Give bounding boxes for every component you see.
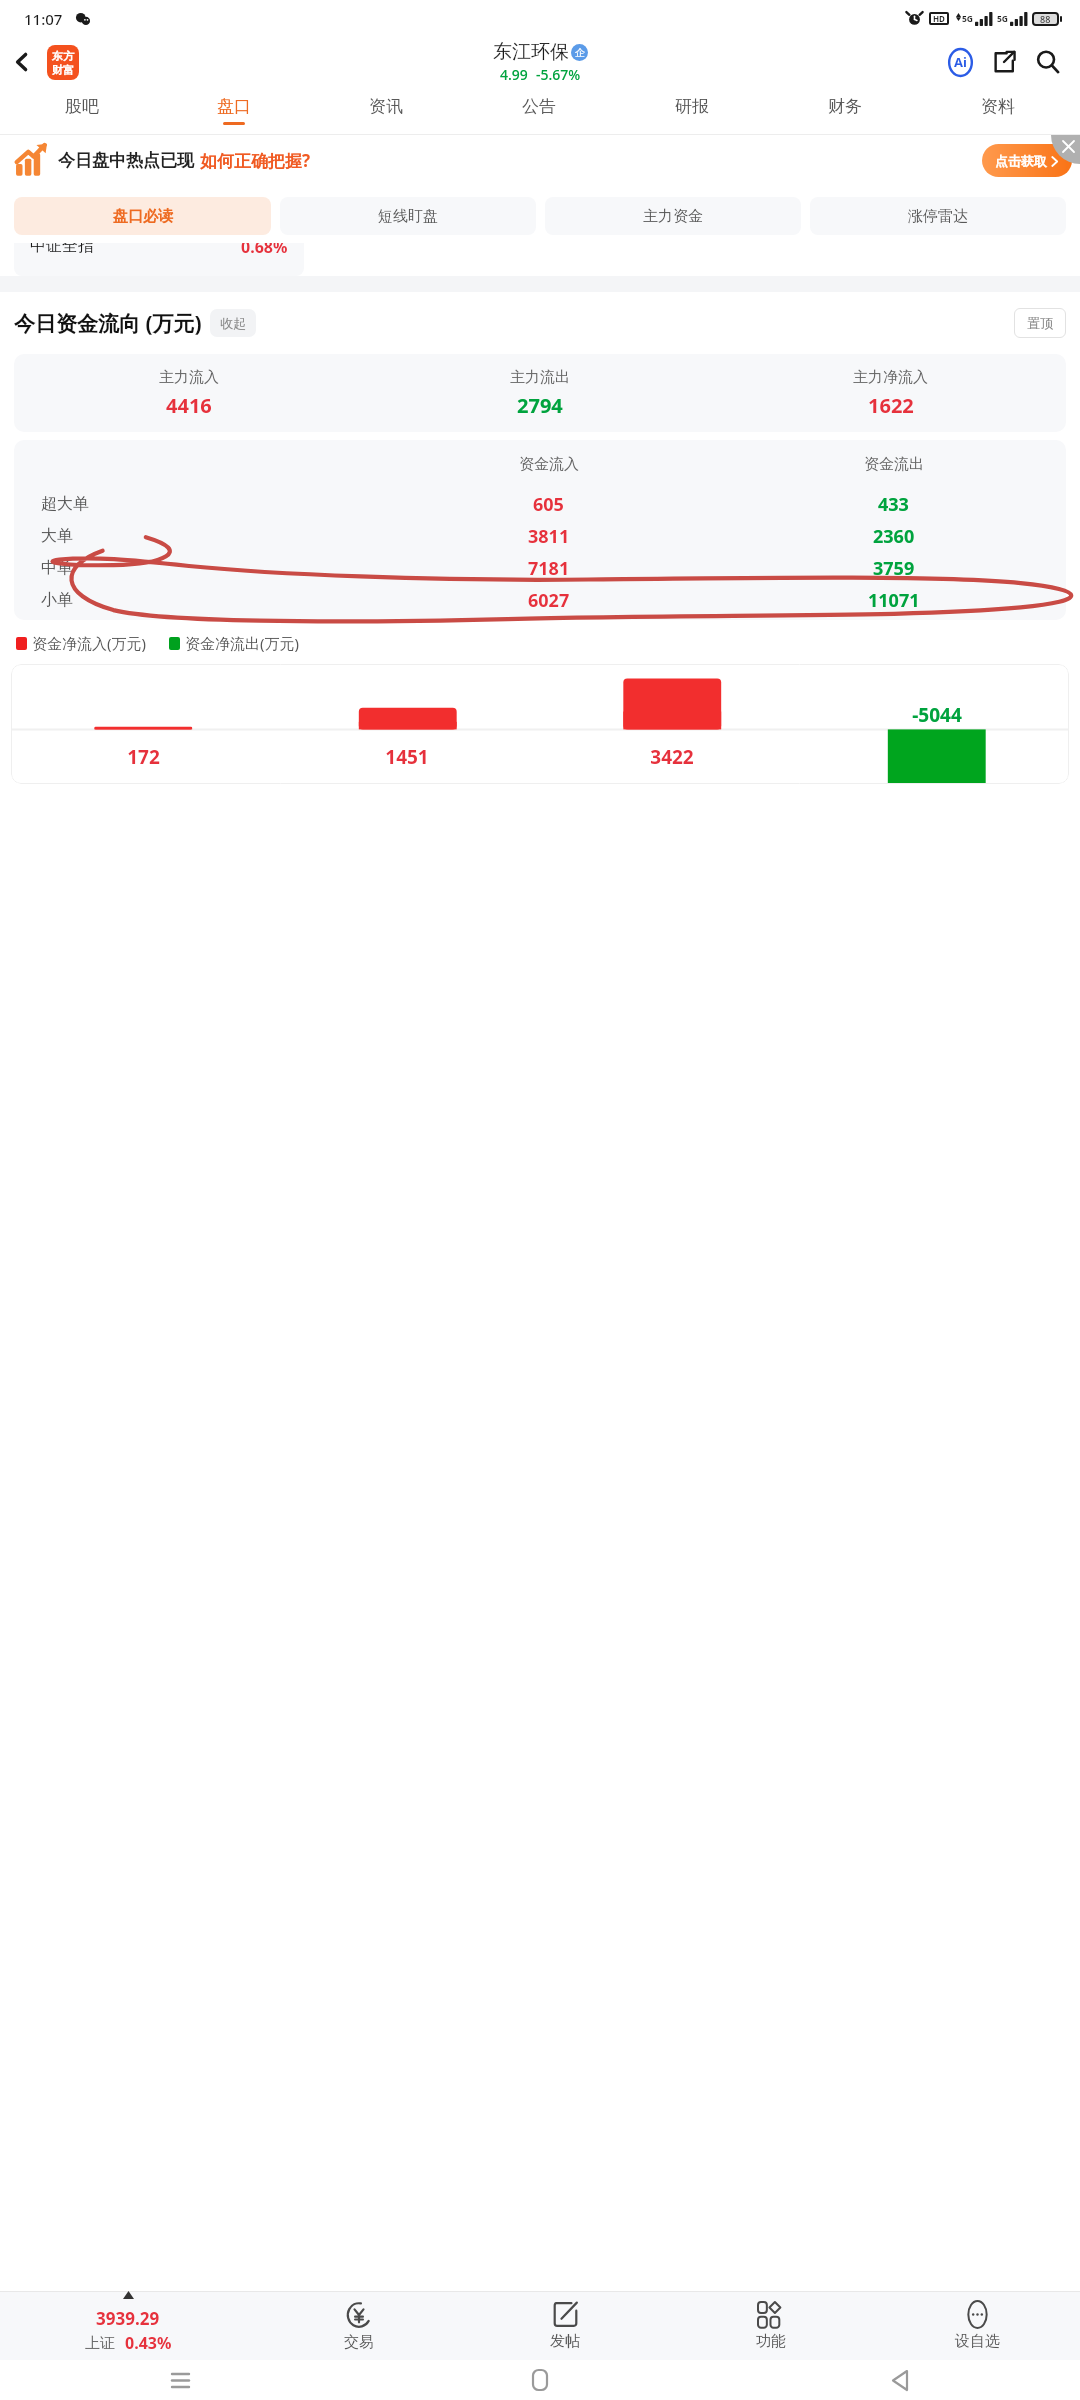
staticText: 605: [533, 492, 564, 517]
staticText: 3939.29: [96, 2307, 160, 2330]
staticText: 中单: [41, 558, 73, 578]
button[interactable]: 3939.29: [0, 2292, 256, 2360]
button[interactable]: Search: [1026, 40, 1070, 84]
staticText: -5.67%: [536, 65, 581, 84]
button[interactable]: 公告: [462, 87, 615, 134]
button[interactable]: 主力资金: [545, 197, 801, 235]
staticText: 如何正确把握?: [200, 149, 311, 172]
staticText: 东江环保: [493, 40, 569, 64]
staticText: 置顶: [1027, 315, 1053, 331]
button[interactable]: 172: [11, 664, 1069, 784]
button[interactable]: 置顶: [1014, 308, 1066, 338]
staticText: 6027: [528, 588, 570, 613]
button[interactable]: 超大单: [14, 488, 1066, 520]
staticText: Ai: [954, 53, 967, 71]
button[interactable]: 主力净流入: [715, 354, 1066, 432]
button[interactable]: Home: [523, 2363, 557, 2397]
button[interactable]: Back: [0, 37, 44, 87]
button[interactable]: 大单: [14, 520, 1066, 552]
button[interactable]: 收起: [210, 309, 256, 337]
staticText: 财富: [52, 63, 74, 77]
button[interactable]: 功能: [668, 2292, 874, 2360]
button[interactable]: 股吧: [6, 87, 158, 134]
button[interactable]: East Money logo: [44, 44, 81, 81]
button[interactable]: 中证全指: [14, 243, 304, 276]
staticText: 盘口必读: [113, 207, 173, 226]
staticText: 4416: [166, 392, 212, 419]
staticText: 股吧: [65, 96, 99, 117]
button[interactable]: 设自选: [874, 2292, 1080, 2360]
staticText: HD: [933, 13, 945, 24]
staticText: 5G: [962, 13, 974, 25]
staticText: 财务: [828, 96, 862, 117]
button[interactable]: 资料: [921, 87, 1074, 134]
button[interactable]: Share: [982, 40, 1026, 84]
staticText: 11071: [868, 588, 920, 613]
staticText: 主力流入: [159, 368, 219, 387]
button[interactable]: 小单: [14, 584, 1066, 616]
staticText: 1451: [385, 744, 429, 770]
staticText: 11:07: [24, 9, 63, 29]
staticText: 172: [127, 744, 160, 770]
button[interactable]: 发帖: [462, 2292, 668, 2360]
button[interactable]: 研报: [615, 87, 768, 134]
staticText: 大单: [41, 526, 73, 546]
staticText: 主力资金: [643, 207, 703, 226]
button[interactable]: Back: [883, 2363, 917, 2397]
staticText: 主力流出: [510, 368, 570, 387]
staticText: 88: [1040, 13, 1051, 25]
staticText: 3759: [873, 556, 915, 581]
staticText: 今日盘中热点已现: [58, 150, 194, 171]
staticText: 中证全指: [30, 243, 94, 256]
staticText: 0.43%: [125, 2332, 172, 2354]
button[interactable]: Recent apps: [163, 2363, 197, 2397]
button[interactable]: Close ad: [1051, 135, 1080, 164]
button[interactable]: 资讯: [310, 87, 462, 134]
staticText: 资金净流出(万元): [185, 633, 300, 653]
button[interactable]: 交易: [256, 2292, 462, 2360]
staticText: 3811: [528, 524, 570, 549]
staticText: 涨停雷达: [908, 207, 968, 226]
button[interactable]: 短线盯盘: [280, 197, 536, 235]
staticText: 企: [575, 46, 585, 59]
staticText: 短线盯盘: [378, 207, 438, 226]
button[interactable]: 财务: [768, 87, 921, 134]
button[interactable]: 点击获取: [982, 144, 1072, 177]
staticText: 上证: [85, 2334, 115, 2353]
staticText: 收起: [220, 315, 246, 331]
button[interactable]: 主力流入: [14, 354, 364, 432]
staticText: 公告: [522, 96, 556, 117]
button[interactable]: 盘口必读: [14, 197, 271, 235]
staticText: 7181: [528, 556, 570, 581]
staticText: 资料: [981, 96, 1015, 117]
staticText: 小单: [41, 590, 73, 610]
staticText: 资金流入: [519, 455, 579, 474]
staticText: 功能: [756, 2332, 786, 2351]
staticText: 1622: [868, 392, 914, 419]
staticText: 研报: [675, 96, 709, 117]
button[interactable]: AI assistant: [938, 40, 982, 84]
staticText: 5G: [997, 13, 1009, 25]
staticText: 资金净流入(万元): [32, 633, 147, 653]
staticText: 盘口: [217, 96, 251, 117]
staticText: 0.68%: [241, 243, 288, 258]
button[interactable]: 今日盘中热点已现: [0, 135, 1080, 185]
staticText: 433: [878, 492, 909, 517]
staticText: 资金流出: [864, 455, 924, 474]
staticText: -5044: [912, 702, 962, 728]
staticText: 今日资金流向 (万元): [14, 309, 202, 338]
staticText: 设自选: [955, 2332, 1000, 2351]
staticText: 2360: [873, 524, 915, 549]
button[interactable]: 涨停雷达: [810, 197, 1066, 235]
staticText: 发帖: [550, 2332, 580, 2351]
staticText: 点击获取: [995, 153, 1047, 169]
button[interactable]: 盘口: [158, 87, 310, 134]
staticText: 交易: [344, 2333, 374, 2352]
staticText: 3422: [650, 744, 694, 770]
staticText: 东方: [52, 49, 74, 63]
staticText: 4.99: [500, 65, 528, 84]
staticText: 超大单: [41, 494, 89, 514]
staticText: 资讯: [369, 96, 403, 117]
button[interactable]: 中单: [14, 552, 1066, 584]
button[interactable]: 主力流出: [364, 354, 715, 432]
